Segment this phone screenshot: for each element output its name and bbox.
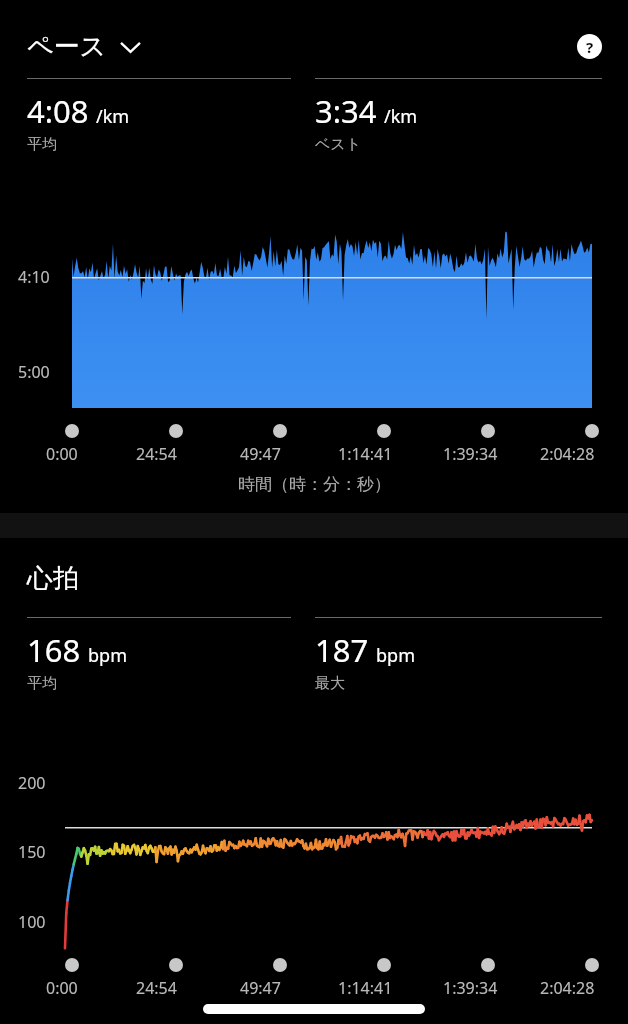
- staticText: 24:54: [136, 443, 177, 465]
- staticText: 0:00: [46, 443, 78, 465]
- staticText: 0:00: [46, 977, 78, 999]
- staticText: 150: [18, 841, 46, 863]
- staticText: 1:39:34: [443, 977, 498, 999]
- staticText: ペース: [27, 30, 107, 63]
- staticText: 4:10: [18, 266, 50, 288]
- staticText: 24:54: [136, 977, 177, 999]
- staticText: bpm: [376, 643, 415, 668]
- staticText: 時間（時：分：秒）: [238, 474, 391, 495]
- staticText: 1:39:34: [443, 443, 498, 465]
- staticText: 平均: [27, 135, 57, 154]
- staticText: 187: [315, 629, 369, 671]
- staticText: 49:47: [240, 443, 281, 465]
- staticText: 2:04:28: [540, 977, 595, 999]
- staticText: /km: [96, 104, 130, 129]
- button[interactable]: Help: [577, 34, 602, 59]
- button[interactable]: ペース: [27, 30, 146, 63]
- staticText: 2:04:28: [540, 443, 595, 465]
- staticText: 49:47: [240, 977, 281, 999]
- staticText: ベスト: [315, 135, 362, 154]
- staticText: ?: [586, 37, 594, 57]
- staticText: 1:14:41: [338, 443, 393, 465]
- staticText: 4:08: [27, 90, 89, 132]
- staticText: 168: [27, 629, 81, 671]
- staticText: 3:34: [315, 90, 377, 132]
- staticText: 1:14:41: [338, 977, 393, 999]
- staticText: /km: [384, 104, 418, 129]
- staticText: 最大: [315, 674, 345, 693]
- staticText: bpm: [88, 643, 127, 668]
- staticText: 心拍: [27, 562, 79, 595]
- staticText: 5:00: [18, 361, 50, 383]
- staticText: 平均: [27, 674, 57, 693]
- staticText: 100: [18, 911, 46, 933]
- staticText: 200: [18, 772, 46, 794]
